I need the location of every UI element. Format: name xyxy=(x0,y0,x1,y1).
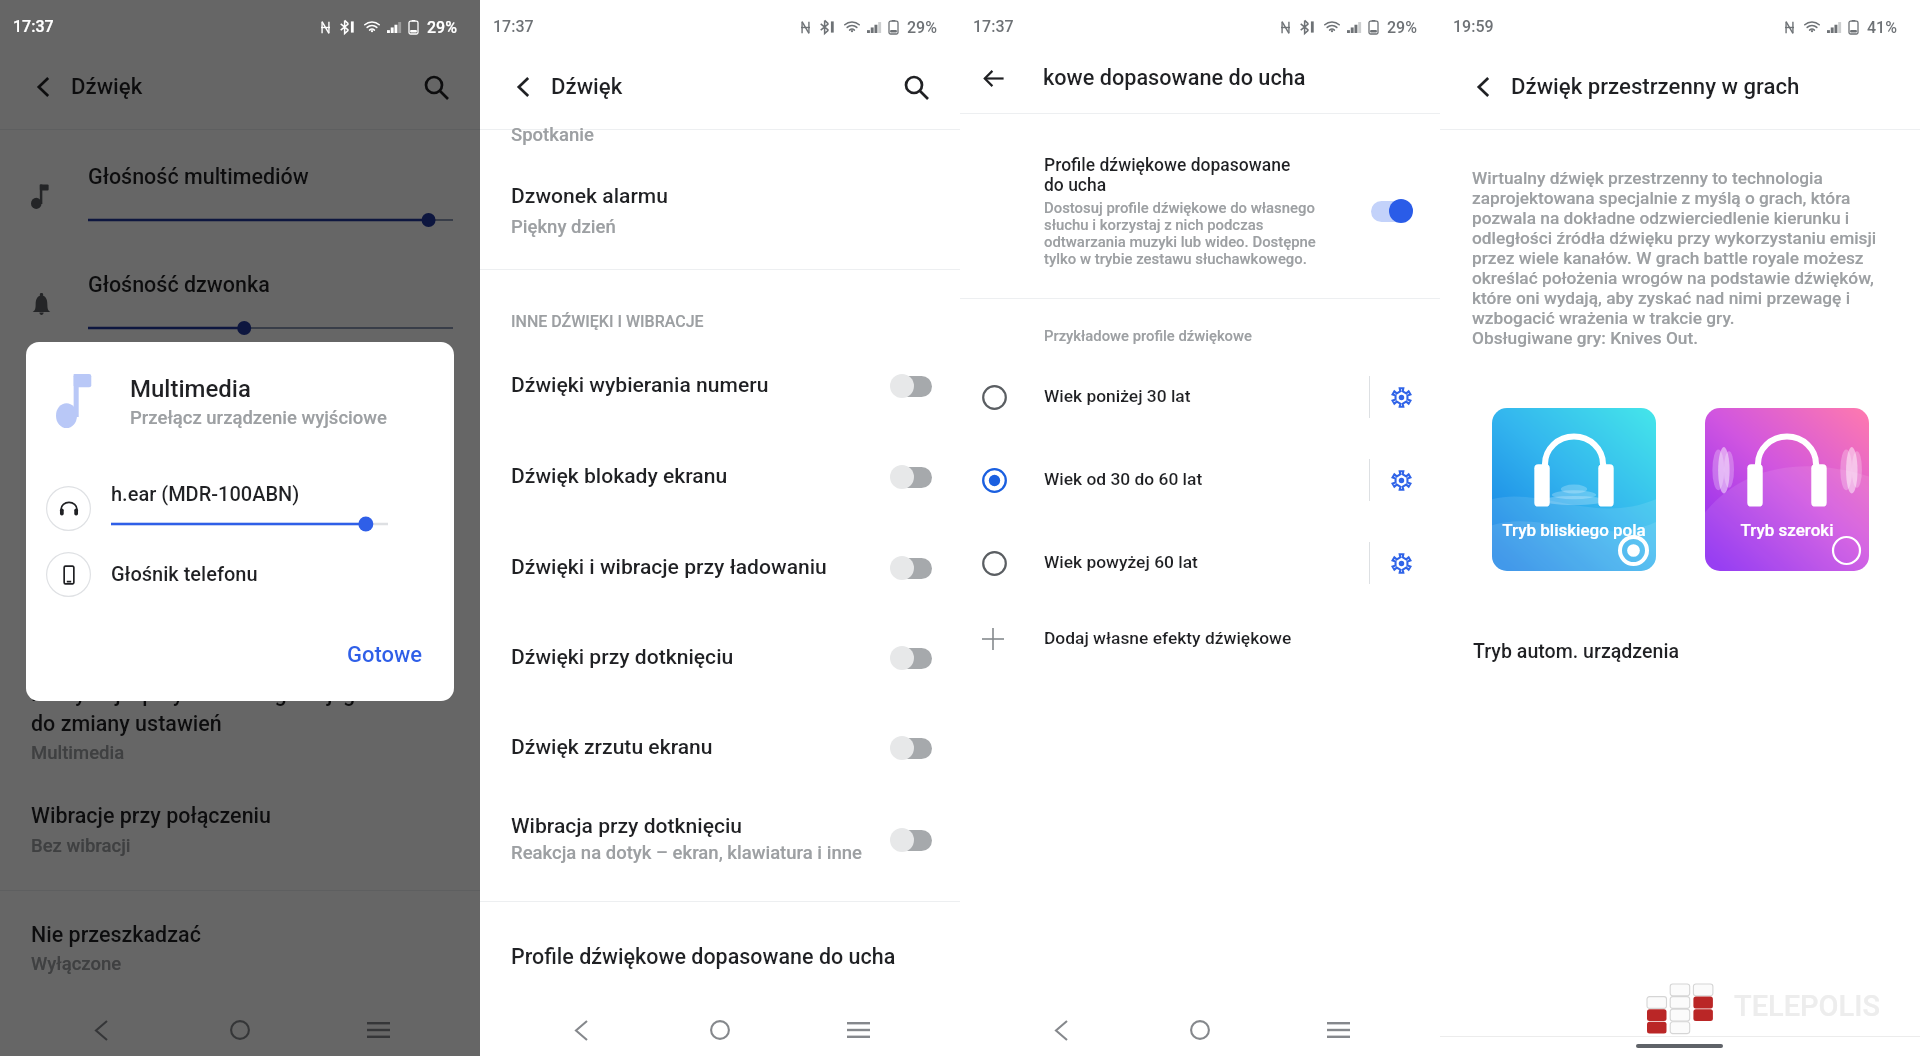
staticText: Przykładowe profile dźwiękowe xyxy=(1044,327,1252,344)
button[interactable] xyxy=(960,452,1440,508)
staticText: Głośność dzwonka xyxy=(88,272,270,297)
button[interactable] xyxy=(480,718,960,778)
button[interactable]: Search xyxy=(896,67,936,107)
staticText: Wiek poniżej 30 lat xyxy=(1044,386,1191,406)
button[interactable] xyxy=(960,140,1440,290)
button[interactable] xyxy=(0,793,480,869)
button[interactable] xyxy=(26,552,454,616)
button[interactable]: Settings xyxy=(1381,460,1421,500)
staticText: Wiek od 30 do 60 lat xyxy=(1044,469,1203,489)
staticText: Tryb szeroki xyxy=(1705,520,1869,540)
button[interactable] xyxy=(960,535,1440,591)
button[interactable]: Recents xyxy=(1312,1004,1364,1056)
button[interactable] xyxy=(480,447,960,507)
staticText: Nie przeszkadzać xyxy=(31,922,201,947)
staticText: kowe dopasowane do ucha xyxy=(1043,65,1306,90)
button[interactable] xyxy=(960,369,1440,425)
button[interactable]: Gotowe xyxy=(326,629,444,681)
button[interactable] xyxy=(480,356,960,416)
staticText: 17:37 xyxy=(13,17,54,36)
button[interactable]: Home xyxy=(214,1004,266,1056)
staticText: Dostosuj profile dźwiękowe do własnego s… xyxy=(1044,199,1326,267)
staticText: Piękny dzień xyxy=(511,216,616,238)
staticText: Wirtualny dźwięk przestrzenny to technol… xyxy=(1472,168,1880,348)
staticText: Wyłączone xyxy=(31,953,122,975)
button[interactable] xyxy=(1371,197,1413,225)
button[interactable] xyxy=(480,538,960,598)
button[interactable] xyxy=(480,930,960,986)
staticText: 29% xyxy=(1387,18,1417,36)
staticText: Dźwięk blokady ekranu xyxy=(511,463,728,488)
staticText: 19:59 xyxy=(1453,17,1494,36)
staticText: do zmiany ustawień xyxy=(31,711,222,736)
staticText: 29% xyxy=(427,18,457,36)
button[interactable]: Settings xyxy=(1381,377,1421,417)
button[interactable]: Back xyxy=(976,60,1012,97)
button[interactable] xyxy=(890,734,932,762)
staticText: Multimedia xyxy=(130,375,251,403)
staticText: Głośność multimediów xyxy=(88,164,309,189)
staticText: Reakcja na dotyk – ekran, klawiatura i i… xyxy=(511,842,862,864)
button[interactable] xyxy=(890,372,932,400)
staticText: Profile dźwiękowe dopasowane do ucha xyxy=(511,944,896,969)
staticText: Korzystaj z przycisków regulacji głośnoś… xyxy=(31,681,437,706)
button[interactable]: Settings xyxy=(1381,543,1421,583)
staticText: Dźwięk xyxy=(551,73,623,99)
staticText: Dźwięki wybierania numeru xyxy=(511,372,769,397)
staticText: Dźwięk zrzutu ekranu xyxy=(511,734,713,759)
staticText: 29% xyxy=(907,18,937,36)
button[interactable]: Back xyxy=(555,1004,607,1056)
staticText: Dźwięki i wibracje przy ładowaniu xyxy=(511,554,827,579)
staticText: Dodaj własne efekty dźwiękowe xyxy=(1044,628,1292,648)
button[interactable]: Back xyxy=(505,68,541,106)
staticText: Wibracja przy dotknięciu xyxy=(511,813,743,838)
staticText: Wiek powyżej 60 lat xyxy=(1044,552,1198,572)
staticText: Dźwięk przestrzenny w grach xyxy=(1511,73,1800,99)
button[interactable] xyxy=(960,611,1440,667)
staticText: Dźwięk xyxy=(71,73,143,99)
staticText: Dźwięki przy dotknięciu xyxy=(511,644,734,669)
button[interactable]: Tryb szeroki xyxy=(1705,408,1869,571)
button[interactable]: Recents xyxy=(352,1004,404,1056)
staticText: 17:37 xyxy=(973,17,1014,36)
staticText: h.ear (MDR-100ABN) xyxy=(111,482,300,505)
button[interactable]: Home xyxy=(694,1004,746,1056)
staticText: Gotowe xyxy=(347,642,423,668)
button[interactable] xyxy=(0,912,480,988)
button[interactable]: Tryb bliskiego pola xyxy=(1492,408,1656,571)
staticText: Profile dźwiękowe dopasowane do ucha xyxy=(1044,155,1314,195)
button[interactable] xyxy=(890,826,932,854)
button[interactable] xyxy=(890,463,932,491)
button[interactable] xyxy=(26,470,454,560)
button[interactable] xyxy=(0,676,480,772)
button[interactable]: Back xyxy=(1035,1004,1087,1056)
staticText: Tryb autom. urządzenia xyxy=(1473,640,1680,663)
staticText: INNE DŹWIĘKI I WIBRACJE xyxy=(511,312,704,331)
button[interactable]: Search xyxy=(416,67,456,107)
staticText: Multimedia xyxy=(31,742,125,764)
staticText: Głośnik telefonu xyxy=(111,562,258,585)
staticText: Bez wibracji xyxy=(31,835,131,857)
button[interactable]: Home xyxy=(1174,1004,1226,1056)
staticText: Spotkanie xyxy=(511,124,594,146)
button[interactable] xyxy=(1440,626,1920,682)
staticText: Tryb bliskiego pola xyxy=(1492,520,1656,540)
button[interactable] xyxy=(890,644,932,672)
button[interactable]: Back xyxy=(1465,68,1501,106)
staticText: TELEPOLIS xyxy=(1734,989,1881,1023)
button[interactable] xyxy=(480,172,960,250)
button[interactable]: Recents xyxy=(832,1004,884,1056)
button[interactable] xyxy=(890,554,932,582)
staticText: 17:37 xyxy=(493,17,534,36)
staticText: Wibracje przy połączeniu xyxy=(31,803,272,828)
button[interactable] xyxy=(480,810,960,870)
staticText: Przełącz urządzenie wyjściowe xyxy=(130,407,387,429)
button[interactable]: Back xyxy=(75,1004,127,1056)
staticText: 41% xyxy=(1867,18,1897,36)
staticText: Dzwonek alarmu xyxy=(511,183,668,208)
button[interactable] xyxy=(480,628,960,688)
button[interactable]: Back xyxy=(25,68,61,106)
